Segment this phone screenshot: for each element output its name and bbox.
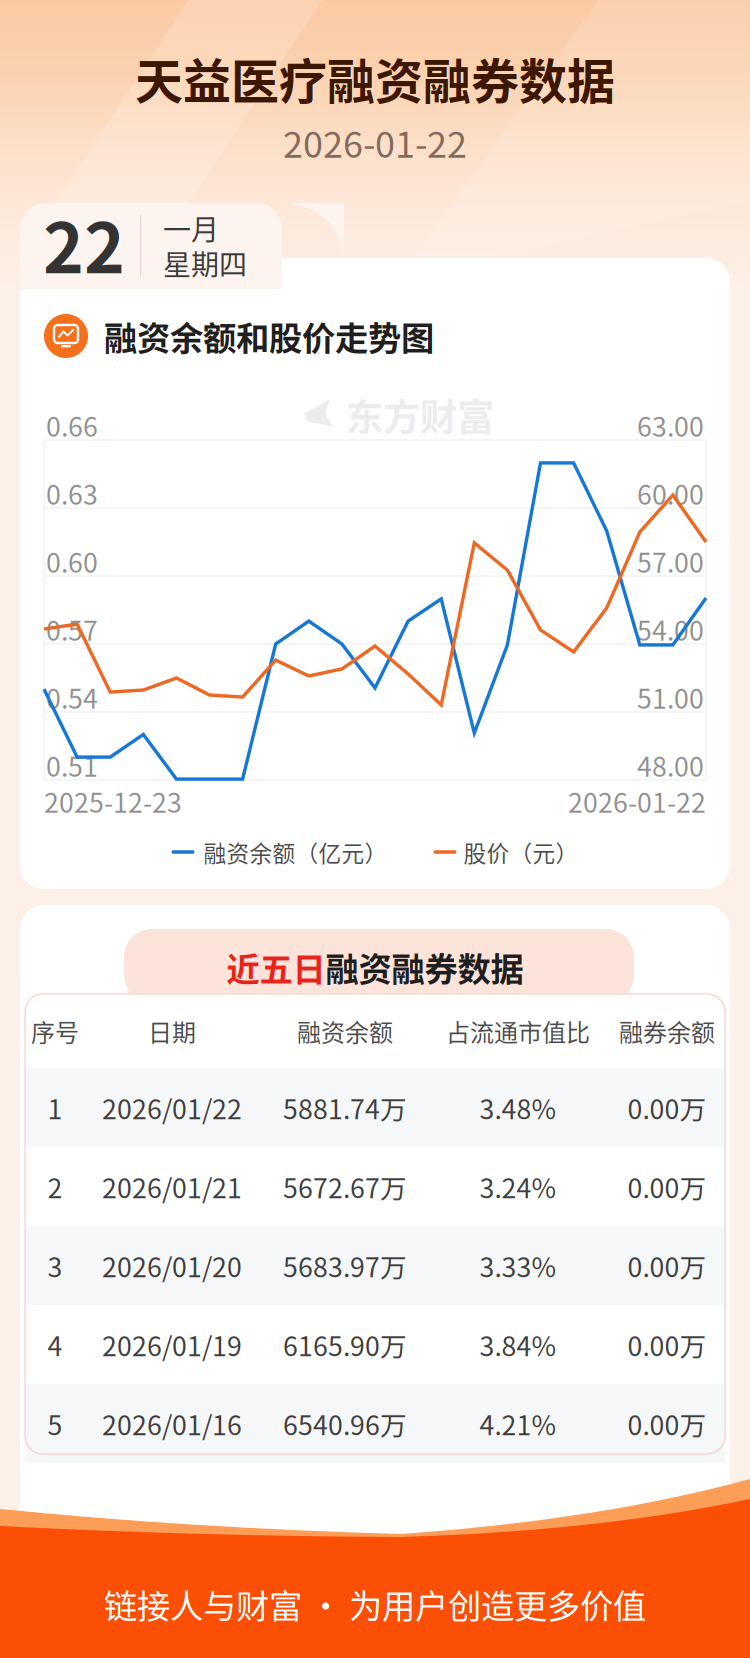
staticText: 2026/01/22 [102, 1088, 242, 1127]
staticText: 融资融券数据 [325, 943, 523, 991]
staticText: 一月 [163, 208, 219, 248]
staticText: 22 [43, 193, 125, 293]
staticText: 5 [47, 1404, 62, 1443]
staticText: 股价（元） [463, 836, 578, 868]
staticText: 3 [47, 1246, 62, 1285]
staticText: 近五日 [226, 943, 325, 991]
staticText: 0.00万 [627, 1167, 706, 1206]
staticText: 序号 [31, 1014, 79, 1048]
staticText: 0.57 [46, 610, 98, 648]
staticText: 2026/01/21 [102, 1167, 242, 1206]
staticText: 星期四 [163, 243, 247, 283]
staticText: 5881.74万 [283, 1088, 407, 1127]
staticText: 0.60 [46, 542, 98, 580]
staticText: 0.51 [46, 746, 98, 784]
staticText: 2026/01/19 [102, 1325, 242, 1364]
staticText: 0.00万 [627, 1325, 706, 1364]
staticText: 2025-12-23 [44, 782, 182, 820]
staticText: 融资余额（亿元） [203, 836, 387, 868]
staticText: 融资余额 [297, 1014, 393, 1048]
staticText: 东方财富 [346, 388, 494, 442]
staticText: 2026-01-22 [568, 782, 706, 820]
staticText: 4 [47, 1325, 62, 1364]
staticText: 0.00万 [627, 1404, 706, 1443]
staticText: 融资余额和股价走势图 [104, 312, 434, 360]
staticText: 2026-01-22 [283, 116, 467, 168]
staticText: 48.00 [637, 746, 704, 784]
staticText: 3.24% [479, 1167, 556, 1206]
staticText: 57.00 [637, 542, 704, 580]
staticText: 0.00万 [627, 1088, 706, 1127]
staticText: 占流通市值比 [446, 1014, 590, 1048]
staticText: 5672.67万 [283, 1167, 407, 1206]
staticText: 6165.90万 [283, 1325, 407, 1364]
staticText: 天益医疗融资融券数据 [135, 43, 615, 113]
staticText: 3.84% [479, 1325, 556, 1364]
staticText: 0.66 [46, 406, 98, 444]
staticText: 2026/01/20 [102, 1246, 242, 1285]
staticText: 1 [47, 1088, 62, 1127]
staticText: 60.00 [637, 474, 704, 512]
staticText: 5683.97万 [283, 1246, 407, 1285]
staticText: 3.48% [479, 1088, 556, 1127]
staticText: 3.33% [479, 1246, 556, 1285]
staticText: 2026/01/16 [102, 1404, 242, 1443]
staticText: 融券余额 [619, 1014, 715, 1048]
staticText: 4.21% [479, 1404, 556, 1443]
staticText: 63.00 [637, 406, 704, 444]
staticText: 54.00 [637, 610, 704, 648]
staticText: 2 [47, 1167, 62, 1206]
staticText: 0.54 [46, 678, 98, 716]
staticText: 6540.96万 [283, 1404, 407, 1443]
staticText: 0.63 [46, 474, 98, 512]
staticText: 0.00万 [627, 1246, 706, 1285]
staticText: 链接人与财富 · 为用户创造更多价值 [104, 1580, 646, 1628]
staticText: 日期 [148, 1014, 196, 1048]
staticText: 51.00 [637, 678, 704, 716]
